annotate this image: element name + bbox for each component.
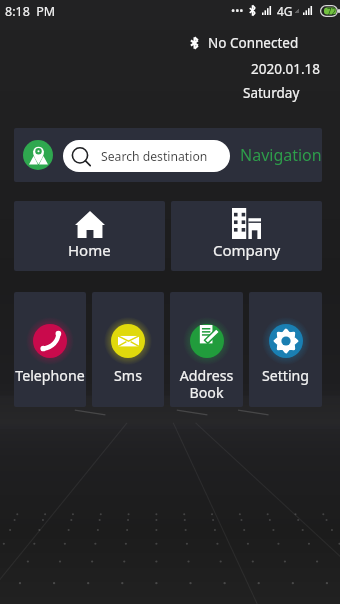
button[interactable]: Search destination [63,140,230,172]
staticText: Sms [92,366,164,385]
button[interactable]: Address Book [170,292,243,407]
staticText: Address Book [170,366,243,403]
staticText: Navigation [240,144,322,166]
staticText: No Connected [208,34,299,52]
button[interactable]: Navigation [240,144,322,166]
staticText: Search destination [101,148,208,165]
button[interactable]: Telephone [14,292,86,407]
staticText: 4G [277,3,293,19]
button[interactable]: Setting [249,292,322,407]
button[interactable]: Company [171,201,322,271]
button[interactable]: Map [23,140,53,170]
staticText: Home [68,240,111,260]
staticText: Saturday [243,84,300,102]
staticText: Setting [249,366,322,385]
staticText: 2020.01.18 [251,60,321,78]
staticText: Company [213,240,281,260]
staticText: 72 [327,6,337,17]
staticText: 8:18 PM [5,3,56,20]
staticText: ••• [231,3,244,18]
staticText: Telephone [14,366,86,385]
button[interactable]: Sms [92,292,164,407]
button[interactable]: Home [14,201,165,271]
